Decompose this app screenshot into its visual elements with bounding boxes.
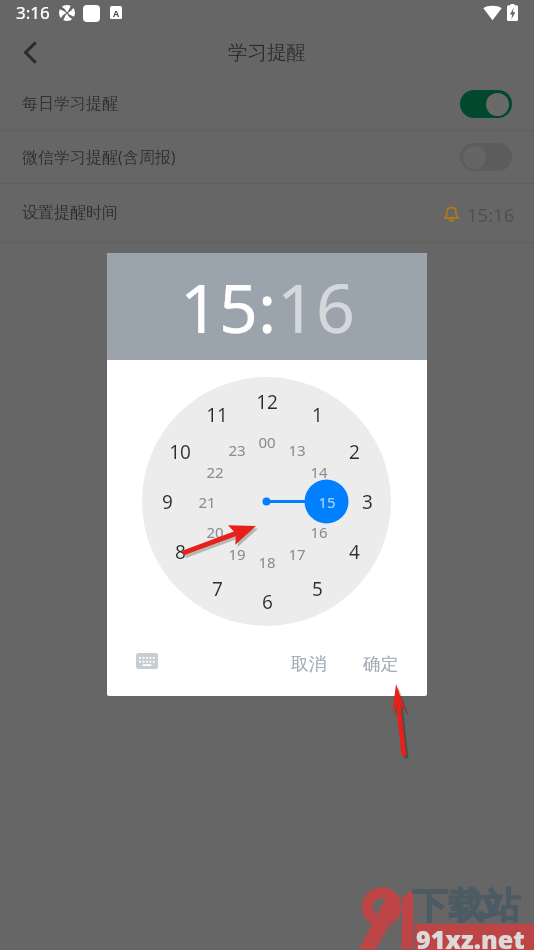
button[interactable]: 微信学习提醒(含周报) bbox=[0, 131, 534, 183]
button[interactable]: 取消 bbox=[285, 647, 332, 681]
staticText: 15 bbox=[318, 492, 336, 512]
button[interactable]: 19 bbox=[222, 539, 252, 569]
staticText: 23 bbox=[228, 440, 246, 460]
button[interactable]: 18 bbox=[252, 547, 282, 577]
staticText: 18 bbox=[258, 552, 276, 572]
button[interactable]: 11 bbox=[202, 400, 232, 430]
staticText: 00 bbox=[258, 432, 276, 452]
button[interactable]: 4 bbox=[339, 537, 369, 567]
staticText: 微信学习提醒(含周报) bbox=[22, 146, 176, 168]
button[interactable]: 5 bbox=[302, 574, 332, 604]
button[interactable]: 16 bbox=[304, 517, 334, 547]
button[interactable]: 14 bbox=[304, 457, 334, 487]
staticText: 7 bbox=[212, 576, 223, 602]
button[interactable]: 确定 bbox=[357, 647, 404, 681]
button[interactable]: 1 bbox=[302, 400, 332, 430]
staticText: 下载站 bbox=[412, 883, 520, 928]
button[interactable]: 12 bbox=[252, 387, 282, 417]
staticText: 91xz.net bbox=[416, 922, 525, 950]
button[interactable]: 13 bbox=[282, 435, 312, 465]
staticText: 取消 bbox=[291, 653, 326, 675]
button[interactable]: 9 bbox=[152, 487, 182, 517]
button[interactable]: Daily study reminder, on bbox=[460, 90, 512, 118]
staticText: 8 bbox=[175, 539, 186, 565]
button[interactable]: 10 bbox=[165, 437, 195, 467]
staticText: 5 bbox=[312, 576, 323, 602]
button[interactable]: 23 bbox=[222, 435, 252, 465]
staticText: 3:16 bbox=[16, 1, 50, 24]
staticText: 13 bbox=[288, 440, 306, 460]
staticText: 17 bbox=[288, 544, 306, 564]
button[interactable]: 3 bbox=[352, 487, 382, 517]
staticText: 6 bbox=[262, 589, 273, 615]
staticText: 1 bbox=[312, 402, 323, 428]
button[interactable]: 15 bbox=[312, 487, 342, 517]
staticText: 设置提醒时间 bbox=[22, 203, 118, 223]
button[interactable]: 8 bbox=[165, 537, 195, 567]
staticText: 22 bbox=[206, 462, 224, 482]
staticText: 14 bbox=[310, 462, 328, 482]
staticText: 10 bbox=[169, 439, 191, 465]
staticText: 2 bbox=[349, 439, 360, 465]
button[interactable]: 16 bbox=[277, 260, 355, 353]
button[interactable]: 00 bbox=[252, 427, 282, 457]
staticText: 20 bbox=[206, 522, 224, 542]
button[interactable]: Back bbox=[8, 26, 52, 78]
staticText: 12 bbox=[256, 389, 278, 415]
staticText: 4 bbox=[349, 539, 360, 565]
staticText: 每日学习提醒 bbox=[22, 94, 118, 114]
staticText: 15:16 bbox=[467, 202, 515, 227]
staticText: 9 bbox=[162, 489, 173, 515]
button[interactable]: 17 bbox=[282, 539, 312, 569]
button[interactable]: 2 bbox=[339, 437, 369, 467]
staticText: 16 bbox=[310, 522, 328, 542]
button[interactable]: 7 bbox=[202, 574, 232, 604]
button[interactable]: 设置提醒时间 bbox=[0, 184, 534, 242]
staticText: 确定 bbox=[363, 653, 398, 675]
button[interactable]: 每日学习提醒 bbox=[0, 78, 534, 130]
staticText: 19 bbox=[228, 544, 246, 564]
staticText: : bbox=[258, 260, 277, 353]
button[interactable]: 15 bbox=[180, 260, 258, 353]
button[interactable]: WeChat study reminder, off bbox=[460, 143, 512, 171]
staticText: 3 bbox=[362, 489, 373, 515]
button[interactable]: 6 bbox=[252, 587, 282, 617]
button[interactable]: 20 bbox=[200, 517, 230, 547]
staticText: 21 bbox=[198, 492, 216, 512]
staticText: 11 bbox=[206, 402, 228, 428]
button[interactable]: 21 bbox=[192, 487, 222, 517]
button[interactable]: Switch to text input mode bbox=[133, 647, 161, 675]
staticText: 学习提醒 bbox=[228, 40, 306, 65]
button[interactable]: 22 bbox=[200, 457, 230, 487]
staticText: A bbox=[113, 7, 120, 19]
button[interactable]: Reminder time 15:16 bbox=[444, 201, 515, 226]
